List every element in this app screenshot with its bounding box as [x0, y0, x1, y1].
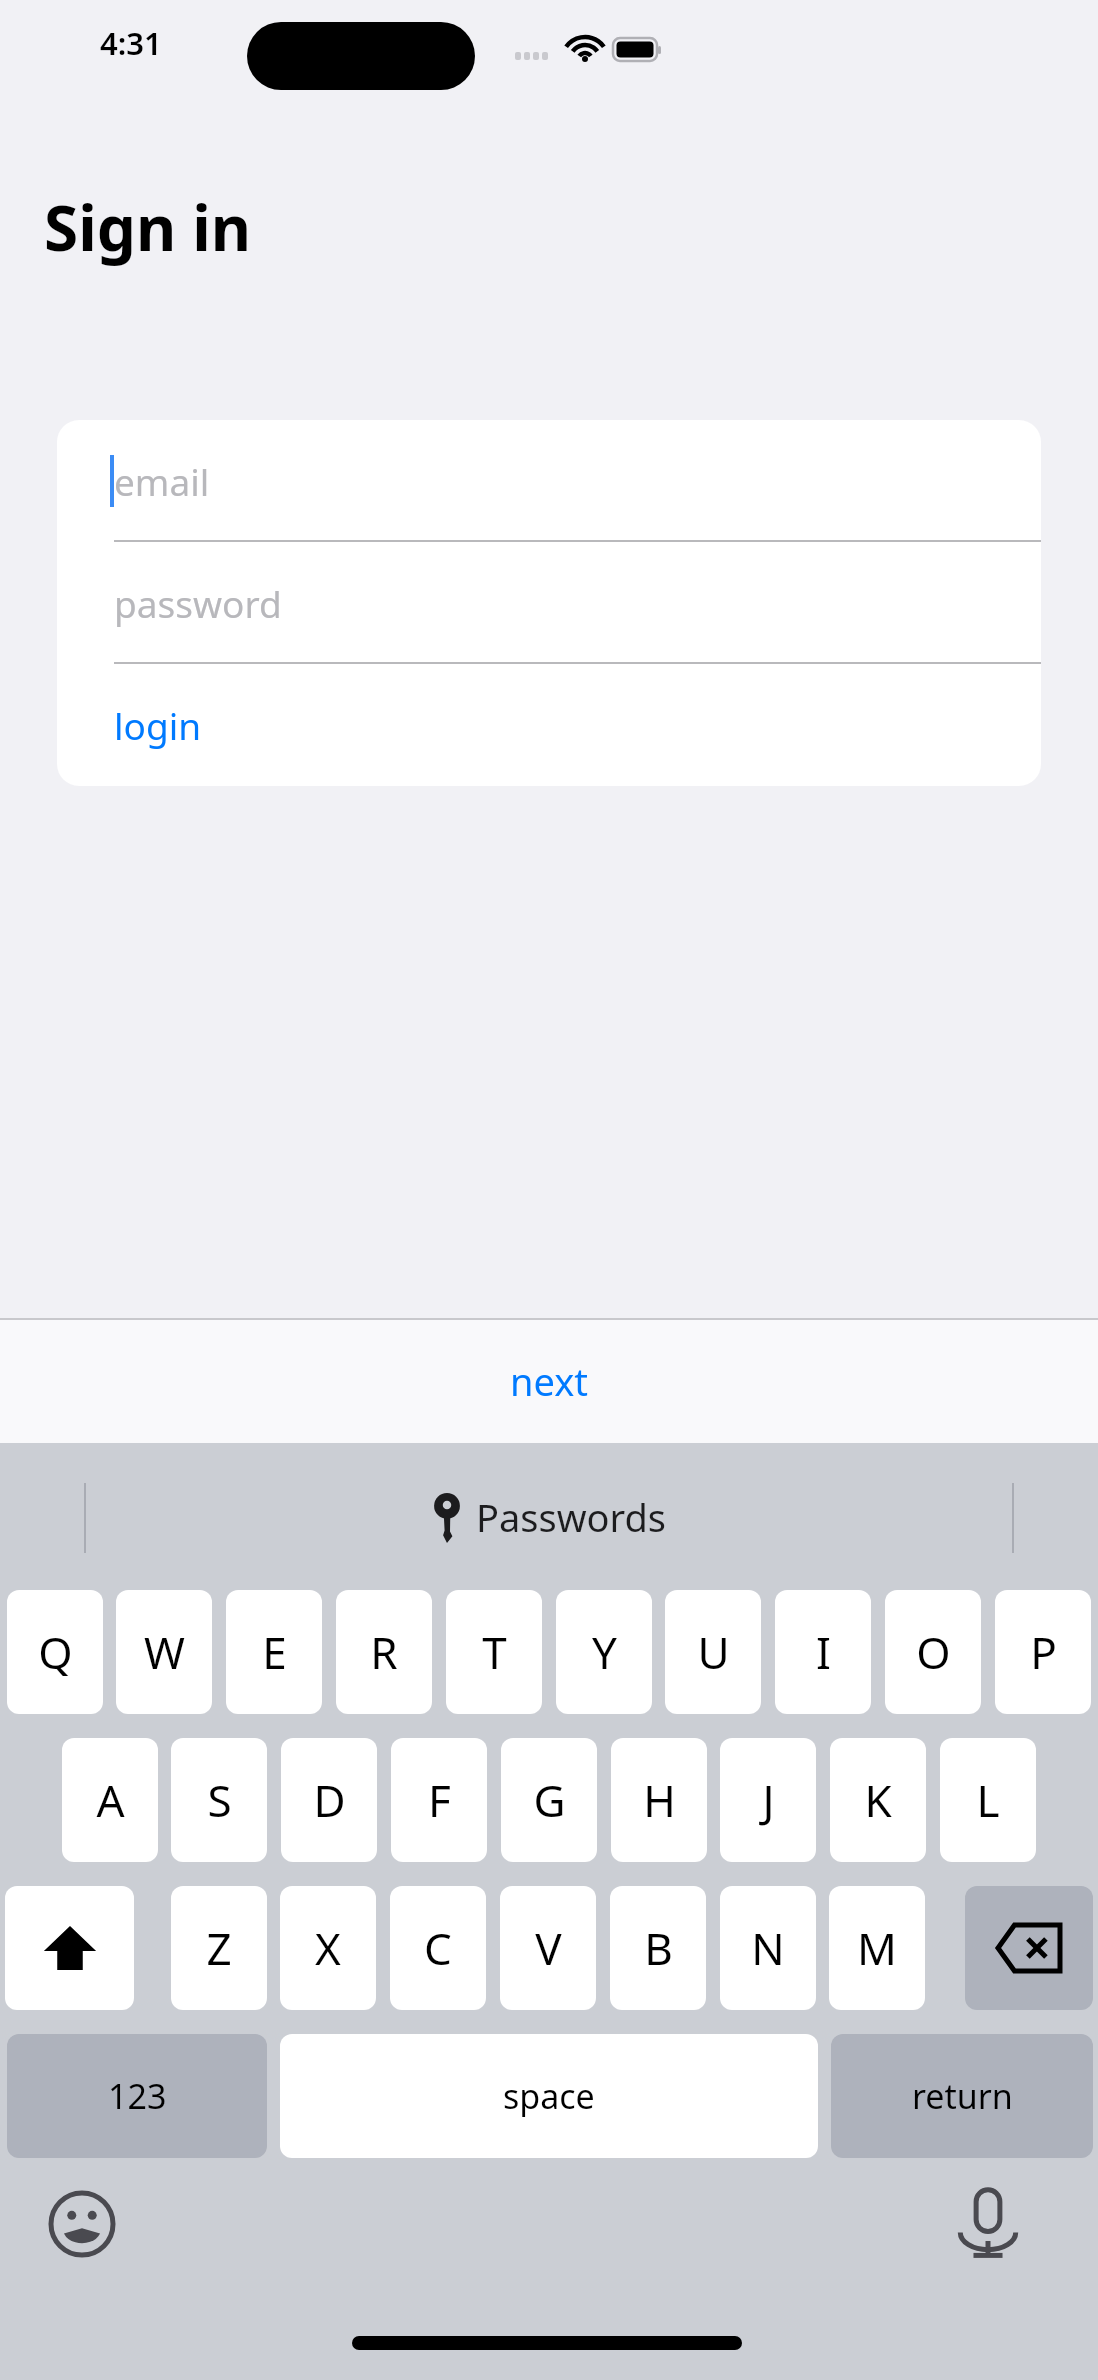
button[interactable]: X — [280, 1886, 376, 2010]
staticText: Q — [38, 1622, 73, 1682]
staticText: V — [535, 1918, 562, 1978]
staticText: W — [144, 1622, 185, 1682]
staticText: C — [424, 1918, 452, 1978]
staticText: R — [370, 1622, 398, 1682]
staticText: O — [916, 1622, 951, 1682]
button[interactable]: O — [885, 1590, 981, 1714]
button[interactable]: V — [500, 1886, 596, 2010]
button[interactable]: 123 — [7, 2034, 267, 2158]
staticText: B — [644, 1918, 673, 1978]
staticText: U — [697, 1622, 730, 1682]
staticText: return — [912, 2073, 1013, 2119]
button[interactable]: Emoji — [48, 2190, 116, 2258]
button[interactable]: H — [611, 1738, 707, 1862]
staticText: login — [114, 700, 202, 750]
staticText: 123 — [108, 2073, 167, 2119]
button[interactable]: N — [720, 1886, 816, 2010]
button[interactable]: M — [829, 1886, 925, 2010]
button[interactable]: space — [280, 2034, 818, 2158]
button[interactable]: password — [57, 542, 1041, 664]
staticText: M — [857, 1918, 897, 1978]
button[interactable]: T — [446, 1590, 542, 1714]
button[interactable]: J — [720, 1738, 816, 1862]
staticText: Z — [206, 1918, 232, 1978]
button[interactable]: R — [336, 1590, 432, 1714]
staticText: email — [114, 456, 210, 506]
button[interactable]: Passwords — [432, 1491, 667, 1543]
button[interactable]: email — [57, 420, 1041, 542]
staticText: L — [976, 1770, 1000, 1830]
button[interactable]: Shift — [5, 1886, 134, 2010]
button[interactable]: D — [281, 1738, 377, 1862]
staticText: Y — [592, 1622, 617, 1682]
staticText: Passwords — [476, 1491, 667, 1543]
button[interactable]: W — [116, 1590, 212, 1714]
button[interactable]: Z — [171, 1886, 267, 2010]
staticText: Sign in — [44, 185, 252, 269]
button[interactable]: C — [390, 1886, 486, 2010]
staticText: H — [643, 1770, 676, 1830]
staticText: K — [864, 1770, 892, 1830]
staticText: J — [762, 1770, 775, 1830]
staticText: A — [96, 1770, 125, 1830]
staticText: N — [751, 1918, 785, 1978]
button[interactable]: Backspace — [965, 1886, 1093, 2010]
button[interactable]: A — [62, 1738, 158, 1862]
staticText: T — [482, 1622, 507, 1682]
button[interactable]: F — [391, 1738, 487, 1862]
staticText: P — [1030, 1622, 1057, 1682]
button[interactable]: Q — [7, 1590, 103, 1714]
other: Passwords — [432, 1491, 462, 1543]
button[interactable]: return — [831, 2034, 1093, 2158]
staticText: I — [816, 1622, 831, 1682]
staticText: S — [207, 1770, 232, 1830]
staticText: F — [428, 1770, 451, 1830]
button[interactable]: I — [775, 1590, 871, 1714]
button[interactable]: Dictation — [955, 2185, 1021, 2265]
button[interactable]: next — [480, 1343, 618, 1419]
button[interactable]: B — [610, 1886, 706, 2010]
staticText: 4:31 — [100, 22, 162, 64]
button[interactable]: G — [501, 1738, 597, 1862]
staticText: G — [533, 1770, 566, 1830]
staticText: D — [313, 1770, 346, 1830]
button[interactable]: K — [830, 1738, 926, 1862]
staticText: password — [114, 578, 282, 628]
button[interactable]: login — [57, 664, 1041, 786]
staticText: E — [262, 1622, 287, 1682]
button[interactable]: L — [940, 1738, 1036, 1862]
button[interactable]: P — [995, 1590, 1091, 1714]
staticText: X — [315, 1918, 341, 1978]
staticText: next — [510, 1355, 588, 1407]
button[interactable]: U — [665, 1590, 761, 1714]
button[interactable]: S — [171, 1738, 267, 1862]
button[interactable]: Y — [556, 1590, 652, 1714]
button[interactable]: E — [226, 1590, 322, 1714]
staticText: space — [503, 2073, 595, 2119]
